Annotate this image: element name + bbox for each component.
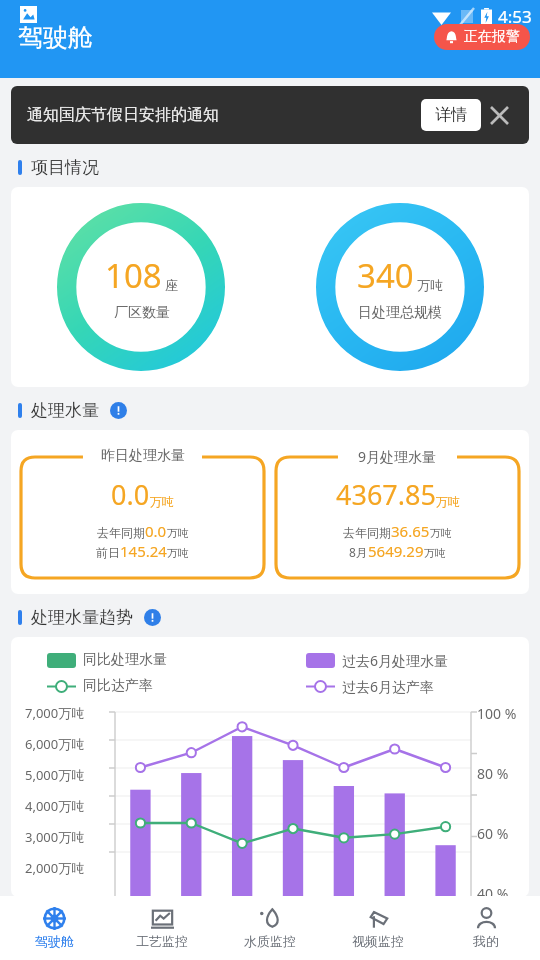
staticText: 万吨 bbox=[167, 526, 189, 540]
staticText: 2,000万吨 bbox=[25, 859, 85, 877]
staticText: 处理水量 bbox=[31, 400, 99, 421]
button[interactable]: 关闭 bbox=[481, 97, 517, 133]
staticText: 去年同期 bbox=[343, 525, 391, 540]
button[interactable]: 说明 bbox=[144, 609, 161, 626]
staticText: 万吨 bbox=[424, 546, 446, 560]
staticText: 万吨 bbox=[150, 494, 174, 509]
staticText: 36.65 bbox=[391, 521, 430, 541]
staticText: 60 % bbox=[477, 824, 509, 843]
staticText: 340 bbox=[357, 253, 414, 298]
staticText: 日处理总规模 bbox=[358, 304, 442, 322]
button[interactable]: 我的 bbox=[432, 896, 540, 960]
button[interactable]: 水质监控 bbox=[216, 896, 324, 960]
staticText: 5649.29 bbox=[368, 541, 424, 561]
button[interactable]: 昨日处理水量 bbox=[21, 446, 264, 578]
staticText: 过去6月达产率 bbox=[342, 677, 435, 696]
staticText: 万吨 bbox=[417, 277, 443, 293]
staticText: 座 bbox=[165, 277, 178, 293]
staticText: 同比达产率 bbox=[83, 677, 153, 695]
staticText: 处理水量趋势 bbox=[31, 607, 133, 628]
button[interactable]: 工艺监控 bbox=[108, 896, 216, 960]
staticText: 0.0 bbox=[145, 521, 167, 541]
staticText: 5,000万吨 bbox=[25, 766, 85, 784]
staticText: 万吨 bbox=[436, 494, 460, 509]
staticText: 厂区数量 bbox=[114, 304, 170, 322]
staticText: 通知国庆节假日安排的通知 bbox=[27, 105, 219, 125]
staticText: 4,000万吨 bbox=[25, 797, 85, 815]
staticText: 工艺监控 bbox=[136, 933, 188, 949]
button[interactable]: 通知国庆节假日安排的通知 bbox=[11, 86, 529, 144]
staticText: 驾驶舱 bbox=[35, 933, 74, 949]
staticText: 昨日处理水量 bbox=[101, 447, 185, 465]
staticText: 正在报警 bbox=[464, 28, 520, 46]
staticText: 80 % bbox=[477, 764, 509, 783]
staticText: 8月 bbox=[349, 544, 368, 560]
staticText: 水质监控 bbox=[244, 933, 296, 949]
staticText: 6,000万吨 bbox=[25, 735, 85, 753]
staticText: 前日 bbox=[96, 545, 120, 560]
staticText: 3,000万吨 bbox=[25, 828, 85, 846]
staticText: 108 bbox=[105, 253, 162, 298]
button[interactable]: 详情 bbox=[421, 99, 481, 131]
staticText: 视频监控 bbox=[352, 933, 404, 949]
staticText: 40 % bbox=[477, 884, 509, 897]
staticText: 100 % bbox=[477, 704, 517, 723]
button[interactable]: 驾驶舱 bbox=[0, 896, 108, 960]
staticText: 7,000万吨 bbox=[25, 704, 85, 722]
button[interactable]: 说明 bbox=[110, 402, 127, 419]
staticText: 万吨 bbox=[167, 546, 189, 560]
staticText: 万吨 bbox=[430, 526, 452, 540]
staticText: 驾驶舱 bbox=[18, 22, 93, 53]
staticText: 去年同期 bbox=[97, 525, 145, 540]
button[interactable]: 9月处理水量 bbox=[276, 446, 519, 578]
staticText: 9月处理水量 bbox=[358, 447, 437, 466]
staticText: 4367.85 bbox=[336, 476, 436, 513]
staticText: 详情 bbox=[435, 105, 467, 125]
staticText: 4:53 bbox=[498, 5, 532, 28]
staticText: 过去6月处理水量 bbox=[342, 651, 449, 670]
button[interactable]: 正在报警 bbox=[434, 24, 530, 50]
staticText: 0.0 bbox=[111, 476, 150, 513]
staticText: 我的 bbox=[473, 933, 499, 949]
staticText: 同比处理水量 bbox=[83, 651, 167, 669]
button[interactable]: 视频监控 bbox=[324, 896, 432, 960]
staticText: 145.24 bbox=[120, 541, 167, 561]
staticText: 项目情况 bbox=[31, 157, 99, 178]
